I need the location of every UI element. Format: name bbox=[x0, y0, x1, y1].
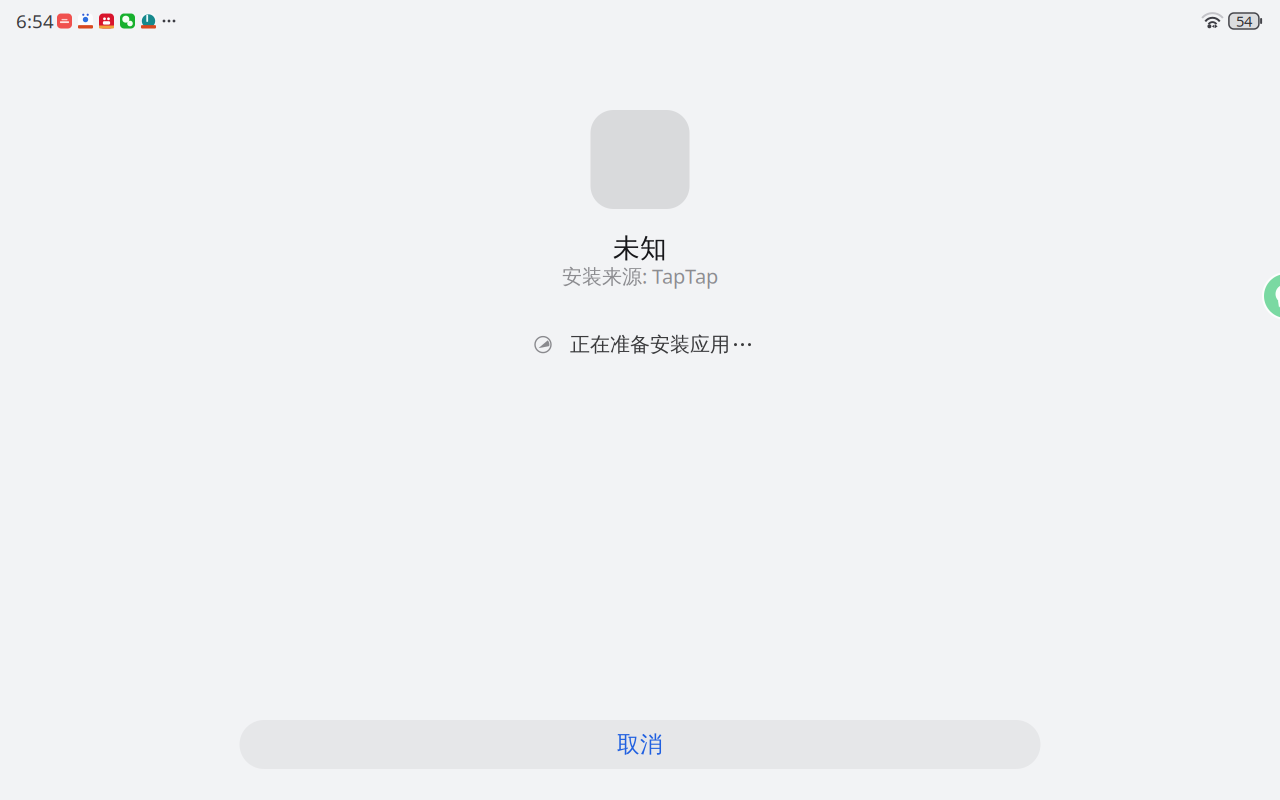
staticText: 安装来源: TapTap bbox=[562, 263, 718, 289]
staticText: 取消 bbox=[617, 731, 663, 758]
staticText: 未知 bbox=[613, 232, 667, 265]
staticText: 54 bbox=[1236, 11, 1252, 31]
staticText: 正在准备安装应用 bbox=[570, 332, 730, 357]
button[interactable]: 取消 bbox=[239, 720, 1040, 769]
button[interactable]: Assistant bbox=[1262, 272, 1280, 320]
staticText: 6:54 bbox=[16, 9, 54, 33]
